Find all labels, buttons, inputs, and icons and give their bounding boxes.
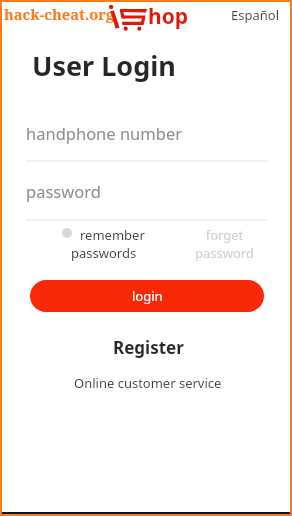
staticText: hop	[148, 2, 189, 31]
button[interactable]: remember	[62, 226, 145, 262]
staticText: remember	[80, 226, 145, 244]
button[interactable]: Español	[221, 1, 289, 29]
button[interactable]: forget password	[195, 226, 254, 262]
staticText: Español	[231, 6, 279, 24]
button[interactable]: Shop home	[107, 2, 148, 32]
staticText: forget password	[195, 226, 254, 262]
staticText: hack-cheat.org	[4, 4, 115, 24]
button[interactable]: login	[30, 280, 264, 312]
staticText: login	[132, 287, 163, 305]
staticText: passwords	[71, 244, 137, 262]
button[interactable]: Online customer service	[74, 374, 222, 392]
staticText: password	[26, 180, 101, 202]
staticText: handphone number	[26, 122, 183, 144]
button[interactable]: Register	[113, 336, 184, 359]
staticText: User Login	[32, 47, 176, 84]
